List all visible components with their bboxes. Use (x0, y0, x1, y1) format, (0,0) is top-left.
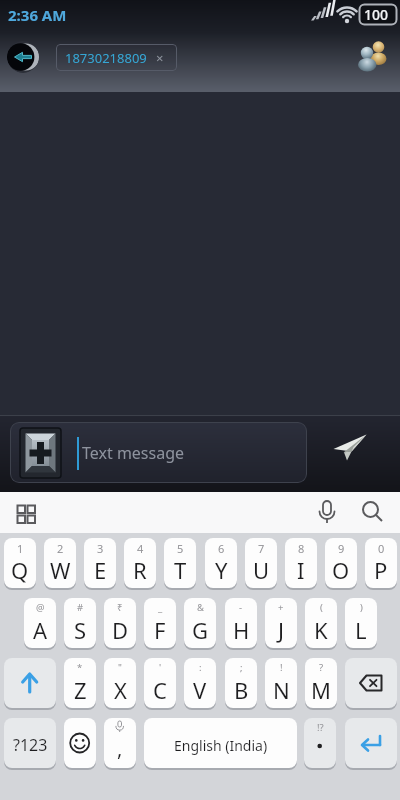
button[interactable] (345, 658, 397, 710)
staticText: U (253, 555, 270, 585)
button[interactable]: !? (304, 718, 336, 770)
staticText: Z (74, 675, 87, 705)
staticText: O (332, 555, 350, 585)
staticText: S (74, 615, 87, 645)
button[interactable]: 18730218809 (56, 44, 177, 71)
staticText: ₹ (117, 601, 123, 614)
staticText: 9 (338, 541, 345, 556)
button[interactable]: 9 (325, 538, 357, 590)
button[interactable] (345, 718, 397, 770)
staticText: T (174, 555, 187, 585)
staticText: N (273, 675, 290, 705)
staticText: * (77, 661, 83, 674)
button[interactable] (12, 496, 44, 528)
staticText: M (311, 675, 331, 705)
staticText: 1 (17, 541, 24, 556)
button[interactable]: + (265, 598, 297, 650)
staticText: B (234, 675, 249, 705)
button[interactable] (320, 425, 380, 481)
button[interactable]: 8 (285, 538, 317, 590)
staticText: 6 (218, 541, 225, 556)
staticText: 2:36 AM (8, 5, 67, 25)
button[interactable] (7, 41, 39, 73)
staticText: C (153, 675, 167, 705)
button[interactable]: * (64, 658, 96, 710)
button[interactable]: & (184, 598, 216, 650)
button[interactable]: ) (345, 598, 377, 650)
staticText: + (278, 601, 284, 614)
staticText: English (India) (174, 736, 268, 755)
staticText: D (112, 615, 129, 645)
staticText: E (94, 555, 107, 585)
staticText: L (355, 615, 367, 645)
staticText: Q (11, 555, 29, 585)
button[interactable]: ' (144, 658, 176, 710)
staticText: _ (158, 601, 163, 614)
staticText: @ (36, 601, 45, 614)
staticText: 7 (258, 541, 265, 556)
button[interactable]: English (India) (144, 718, 297, 770)
staticText: F (154, 615, 166, 645)
staticText: A (33, 615, 48, 645)
staticText: 5 (177, 541, 184, 556)
button[interactable] (4, 658, 56, 710)
staticText: ( (320, 601, 323, 614)
staticText: G (192, 615, 209, 645)
button[interactable] (64, 718, 96, 770)
staticText: H (233, 615, 250, 645)
staticText: 18730218809 (65, 49, 147, 67)
staticText: " (118, 661, 122, 674)
staticText: 4 (137, 541, 144, 556)
button[interactable]: ; (225, 658, 257, 710)
button[interactable]: ₹ (104, 598, 136, 650)
staticText: # (77, 601, 84, 614)
button[interactable]: _ (144, 598, 176, 650)
button[interactable]: 5 (164, 538, 196, 590)
staticText: ?123 (13, 734, 48, 756)
button[interactable]: 2 (44, 538, 76, 590)
button[interactable]: 7 (245, 538, 277, 590)
button[interactable]: 0 (365, 538, 397, 590)
button[interactable] (20, 428, 61, 478)
button[interactable] (354, 38, 392, 74)
button[interactable]: : (184, 658, 216, 710)
button[interactable]: @ (24, 598, 56, 650)
button[interactable]: Text message (10, 422, 307, 483)
button[interactable]: 6 (205, 538, 237, 590)
staticText: K (314, 615, 328, 645)
staticText: 100 (364, 5, 389, 24)
staticText: J (278, 615, 285, 645)
staticText: ; (240, 661, 243, 674)
staticText: - (239, 601, 243, 614)
button[interactable]: " (104, 658, 136, 710)
button[interactable]: ? (305, 658, 337, 710)
button[interactable]: ! (265, 658, 297, 710)
staticText: , (117, 735, 123, 762)
staticText: V (193, 675, 207, 705)
button[interactable]: 4 (124, 538, 156, 590)
button[interactable]: ( (305, 598, 337, 650)
staticText: ? (319, 661, 324, 674)
staticText: R (133, 555, 147, 585)
staticText: ) (360, 601, 363, 614)
button[interactable]: ?123 (4, 718, 56, 770)
staticText: !? (317, 721, 324, 734)
staticText: Y (215, 555, 228, 585)
staticText: I (297, 555, 305, 585)
staticText: : (199, 661, 202, 674)
button[interactable] (311, 496, 343, 528)
staticText: X (114, 675, 127, 705)
staticText: & (197, 601, 204, 614)
staticText: 8 (298, 541, 305, 556)
button[interactable]: 3 (84, 538, 116, 590)
staticText: W (50, 555, 71, 585)
button[interactable]: - (225, 598, 257, 650)
staticText: 0 (378, 541, 385, 556)
button[interactable]: 1 (4, 538, 36, 590)
button[interactable]: # (64, 598, 96, 650)
staticText: 2 (57, 541, 64, 556)
staticText: ! (280, 661, 283, 674)
button[interactable] (356, 496, 388, 528)
button[interactable]: , (104, 718, 136, 770)
staticText: Text message (82, 442, 185, 464)
